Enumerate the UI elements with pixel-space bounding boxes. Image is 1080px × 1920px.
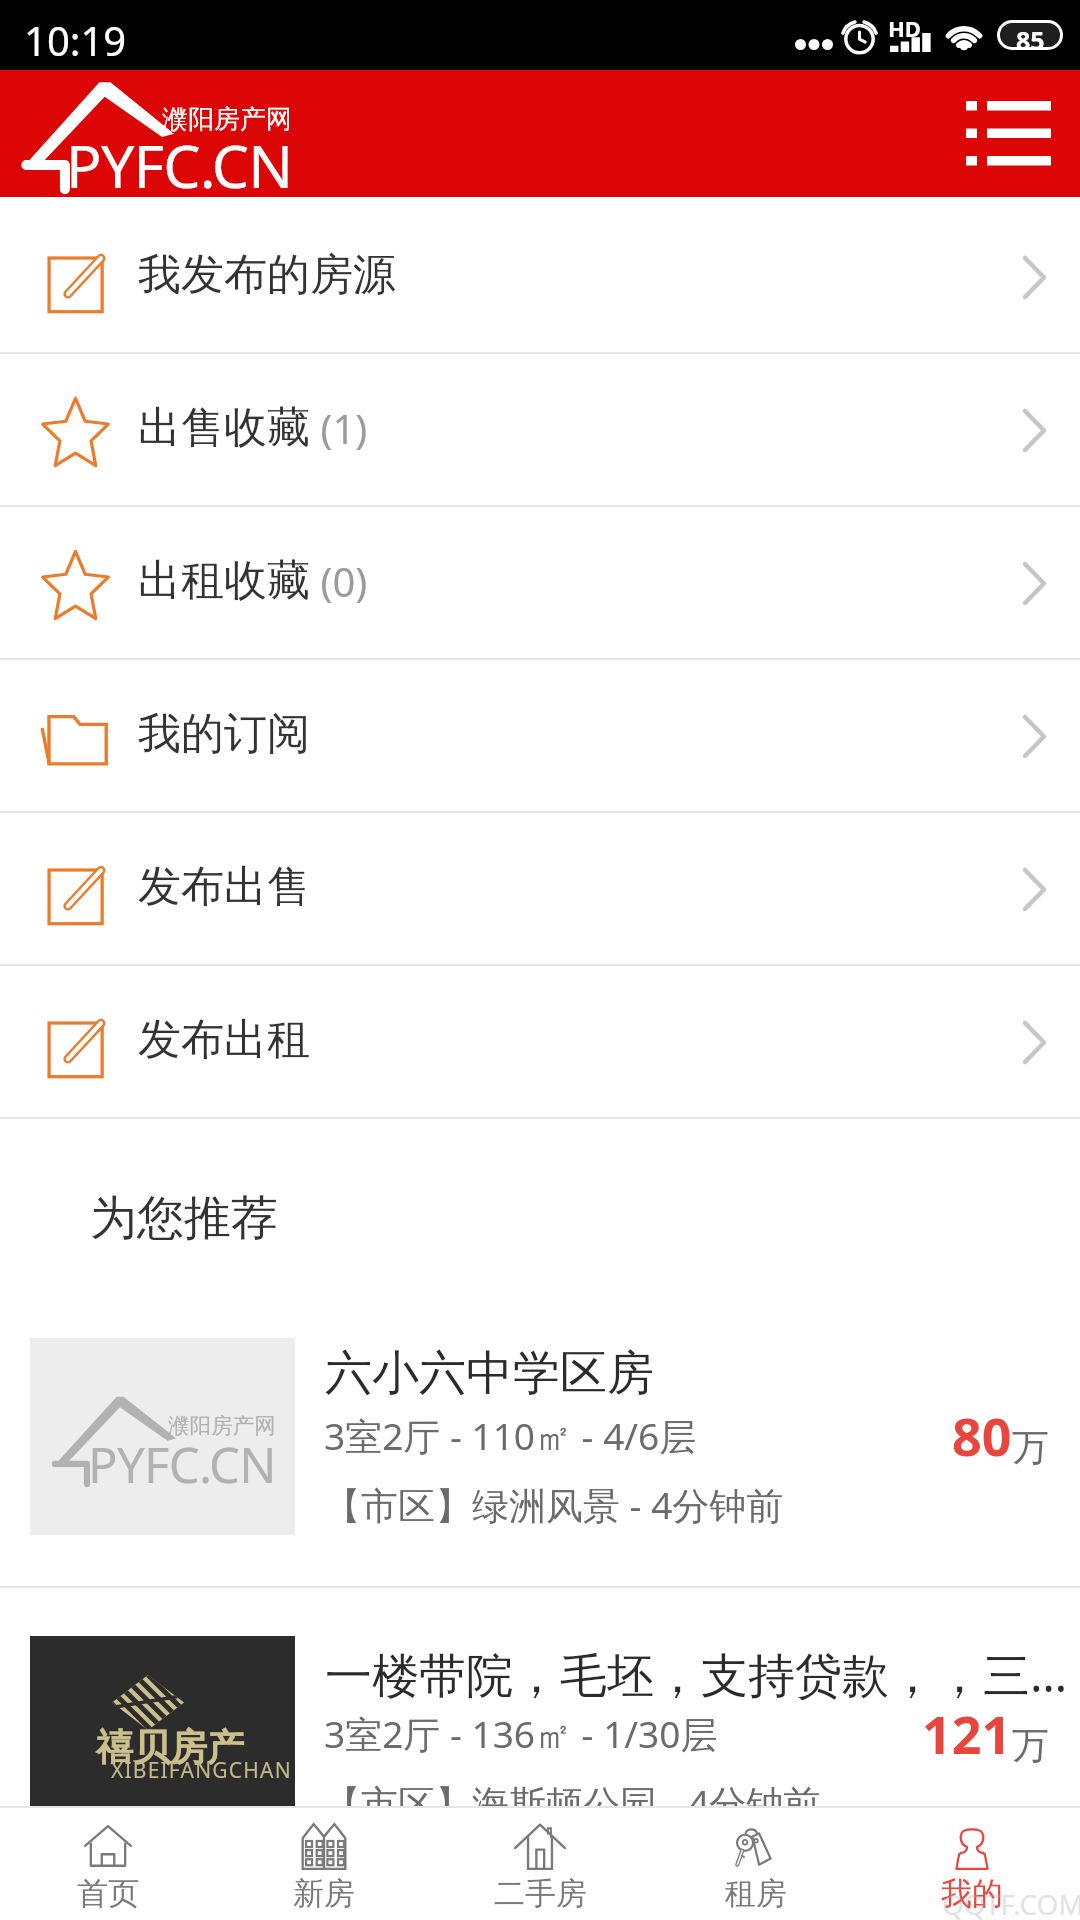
button[interactable]: 新房 [216, 1806, 432, 1920]
staticText: 首页 [77, 1874, 139, 1913]
staticText: 为您推荐 [90, 1189, 278, 1248]
staticText: 我的订阅 [138, 707, 310, 761]
staticText: (0) [310, 554, 368, 608]
button[interactable]: 租房 [648, 1806, 864, 1920]
staticText: 禧贝房产 [96, 1724, 244, 1771]
staticText: (1) [310, 401, 368, 455]
staticText: 万 [1012, 1424, 1049, 1471]
staticText: 濮阳房产网 [168, 1412, 276, 1439]
staticText: 租房 [725, 1874, 787, 1913]
button[interactable]: 二手房 [432, 1806, 648, 1920]
staticText: QQTF.COM [942, 1885, 1080, 1920]
staticText: 我发布的房源 [138, 248, 396, 302]
button[interactable]: 出租收藏 [0, 507, 1080, 658]
button[interactable]: 禧贝房产 [0, 1620, 1080, 1806]
staticText: 3室2厅 - 110㎡ - 4/6层 [324, 1410, 697, 1461]
button[interactable]: Menu [941, 83, 1076, 183]
staticText: 新房 [293, 1874, 355, 1913]
staticText: 六小六中学区房 [325, 1344, 1080, 1403]
staticText: 濮阳房产网 [162, 103, 292, 136]
staticText: 85 [1016, 23, 1045, 47]
staticText: 出租收藏 [138, 554, 310, 608]
button[interactable]: 我的 [864, 1806, 1080, 1920]
staticText: PYFC.CN [88, 1431, 276, 1498]
staticText: 【市区】绿洲风景 - 4分钟前 [324, 1479, 784, 1530]
button[interactable]: 发布出售 [0, 813, 1080, 964]
button[interactable]: 发布出租 [0, 966, 1080, 1117]
button[interactable]: 濮阳房产网 [0, 1322, 1080, 1586]
staticText: 3室2厅 - 136㎡ - 1/30层 [324, 1708, 718, 1759]
staticText: 发布出租 [138, 1013, 310, 1067]
staticText: PYFC.CN [66, 125, 293, 205]
staticText: XIBEIFANGCHAN [111, 1756, 292, 1785]
staticText: 我的 [941, 1874, 1003, 1913]
staticText: 发布出售 [138, 860, 310, 914]
staticText: 【市区】海斯顿公园 - 4分钟前 [324, 1777, 821, 1828]
staticText: 121 [922, 1698, 1012, 1769]
staticText: 出售收藏 [138, 401, 310, 455]
staticText: 一楼带院，毛坯，支持贷款，，三… [325, 1642, 1080, 1706]
staticText: 万 [1012, 1722, 1049, 1769]
staticText: 80 [952, 1400, 1012, 1471]
staticText: 10:19 [24, 13, 127, 67]
staticText: 二手房 [494, 1874, 587, 1913]
staticText: HD [888, 13, 921, 43]
button[interactable]: 我的订阅 [0, 660, 1080, 811]
button[interactable]: 出售收藏 [0, 354, 1080, 505]
button[interactable]: 我发布的房源 [0, 201, 1080, 352]
button[interactable]: 首页 [0, 1806, 216, 1920]
